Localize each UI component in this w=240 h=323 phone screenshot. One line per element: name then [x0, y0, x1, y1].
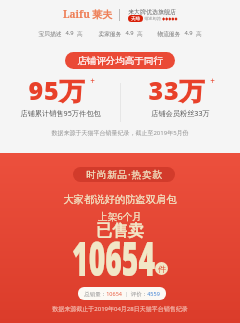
staticText: + — [90, 75, 95, 86]
staticText: 高 — [196, 30, 202, 37]
staticText: 店铺会员粉丝33万 — [151, 108, 210, 118]
staticText: 已售卖 — [0, 221, 240, 241]
staticText: 大家都说好的防盗双肩包 — [0, 193, 240, 206]
staticText: 卖家服务 — [98, 30, 122, 37]
staticText: 天猫 — [131, 16, 140, 22]
staticText: 33万 — [148, 73, 206, 107]
staticText: 10654 — [72, 226, 155, 290]
staticText: 数据来源于天猫平台销量纪录，截止至2019年5月份 — [0, 129, 240, 137]
staticText: 高 — [77, 30, 83, 37]
staticText: 时尚新品·热卖款 — [86, 168, 163, 181]
staticText: 高 — [137, 30, 143, 37]
staticText: 上架6个月 — [0, 210, 240, 223]
staticText: 4.9 — [65, 29, 74, 37]
staticText: Laifu 莱夫 — [63, 7, 113, 21]
staticText: 4.9 — [125, 29, 134, 37]
staticText: 来大牌优选旗舰店 — [128, 8, 176, 16]
staticText: 描述相符 — [144, 16, 161, 21]
staticText: 宝贝描述 — [38, 30, 62, 37]
staticText: 总销量：10654 | 评价：4559 — [84, 290, 160, 298]
staticText: 4.9 — [184, 29, 193, 37]
button[interactable]: 店铺评分均高于同行 — [65, 52, 175, 69]
staticText: 95万 — [28, 73, 86, 107]
staticText: 件 — [158, 264, 166, 274]
button[interactable]: 时尚新品·热卖款 — [73, 167, 175, 182]
staticText: 店铺评分均高于同行 — [77, 55, 163, 67]
staticText: + — [210, 75, 215, 86]
staticText: 数据来源截止于2019年04月28日天猫平台销售纪录 — [0, 305, 240, 313]
staticText: 店铺累计销售95万件包包 — [20, 108, 101, 118]
staticText: 物流服务 — [157, 30, 181, 37]
